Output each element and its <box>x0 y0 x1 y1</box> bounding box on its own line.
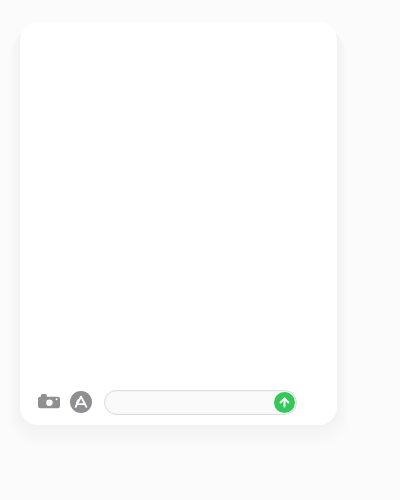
button[interactable]: Camera <box>36 389 62 415</box>
button[interactable]: Apps <box>68 389 94 415</box>
button[interactable]: Send <box>104 390 297 415</box>
button[interactable]: Send <box>274 392 295 413</box>
